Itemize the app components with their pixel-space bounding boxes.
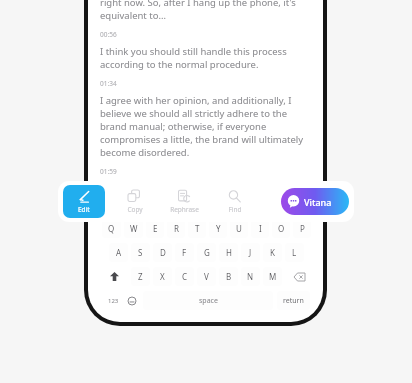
staticText: P <box>300 223 305 234</box>
staticText: V <box>204 271 209 282</box>
button[interactable]: return <box>277 291 310 310</box>
button[interactable]: J <box>241 243 260 262</box>
staticText: W <box>130 223 138 234</box>
button[interactable]: R <box>167 219 185 238</box>
button[interactable]: O <box>272 219 290 238</box>
staticText: return <box>283 296 304 306</box>
staticText: space <box>199 296 218 306</box>
button[interactable]: Y <box>209 219 227 238</box>
button[interactable]: V <box>197 267 216 286</box>
button[interactable]: Emoji keyboard <box>125 294 139 308</box>
button[interactable]: Q <box>102 219 121 238</box>
staticText: I think you should still handle this pro… <box>100 182 287 195</box>
staticText: 00:56 <box>100 30 117 39</box>
button[interactable]: E <box>146 219 164 238</box>
button[interactable]: Backspace <box>288 267 310 286</box>
button[interactable]: Vitana <box>281 188 349 215</box>
button[interactable]: G <box>197 243 216 262</box>
button[interactable]: U <box>230 219 248 238</box>
button[interactable]: Z <box>131 267 150 286</box>
staticText: O <box>278 223 285 234</box>
staticText: U <box>236 223 242 234</box>
staticText: I <box>259 223 262 234</box>
button[interactable]: T <box>188 219 206 238</box>
button[interactable]: S <box>131 243 150 262</box>
staticText: Copy <box>127 205 143 214</box>
staticText: 01:34 <box>100 79 117 88</box>
staticText: 01:59 <box>100 167 117 176</box>
staticText: Z <box>138 271 143 282</box>
button[interactable]: K <box>263 243 282 262</box>
staticText: right now. So, after I hang up the phone… <box>100 0 296 9</box>
staticText: S <box>138 247 143 258</box>
staticText: J <box>249 247 252 258</box>
button[interactable]: F <box>175 243 194 262</box>
staticText: Vitana <box>304 196 332 208</box>
staticText: D <box>160 247 166 258</box>
staticText: become disordered. <box>100 146 190 159</box>
staticText: equivalent to… <box>100 9 166 22</box>
staticText: E <box>153 223 158 234</box>
staticText: Y <box>216 223 221 234</box>
staticText: N <box>247 271 254 282</box>
staticText: believe we should all strictly adhere to… <box>100 107 288 120</box>
staticText: F <box>182 247 187 258</box>
staticText: T <box>195 223 200 234</box>
staticText: H <box>226 247 232 258</box>
button[interactable]: Copy <box>114 185 155 218</box>
button[interactable]: M <box>263 267 282 286</box>
staticText: 123 <box>108 297 119 305</box>
button[interactable]: L <box>285 243 304 262</box>
staticText: Q <box>108 223 115 234</box>
button[interactable]: Edit <box>63 185 105 218</box>
button[interactable]: B <box>219 267 238 286</box>
button[interactable]: D <box>153 243 172 262</box>
button[interactable]: 123 <box>103 291 123 310</box>
staticText: R <box>174 223 179 234</box>
button[interactable]: space <box>143 291 273 310</box>
staticText: Edit <box>78 205 90 214</box>
staticText: G <box>204 247 210 258</box>
button[interactable]: H <box>219 243 238 262</box>
staticText: Rephrase <box>170 205 199 214</box>
staticText: compromises a little, the brand will ult… <box>100 133 304 146</box>
button[interactable]: Rephrase <box>164 185 205 218</box>
staticText: K <box>270 247 275 258</box>
staticText: X <box>160 271 165 282</box>
button[interactable]: C <box>175 267 194 286</box>
button[interactable]: Find <box>214 185 255 218</box>
button[interactable]: P <box>293 219 311 238</box>
staticText: M <box>269 271 277 282</box>
staticText: I agree with her opinion, and additional… <box>100 94 292 107</box>
staticText: C <box>182 271 188 282</box>
staticText: I think you should still handle this pro… <box>100 45 287 58</box>
staticText: brand manual; otherwise, if everyone <box>100 120 267 133</box>
button[interactable]: A <box>109 243 128 262</box>
staticText: L <box>292 247 297 258</box>
button[interactable]: I <box>251 219 269 238</box>
button[interactable]: N <box>241 267 260 286</box>
button[interactable]: Shift <box>103 267 125 286</box>
staticText: A <box>116 247 122 258</box>
button[interactable]: W <box>124 219 143 238</box>
button[interactable]: X <box>153 267 172 286</box>
staticText: B <box>226 271 232 282</box>
staticText: Find <box>228 205 242 214</box>
staticText: according to the normal procedure. <box>100 58 259 71</box>
